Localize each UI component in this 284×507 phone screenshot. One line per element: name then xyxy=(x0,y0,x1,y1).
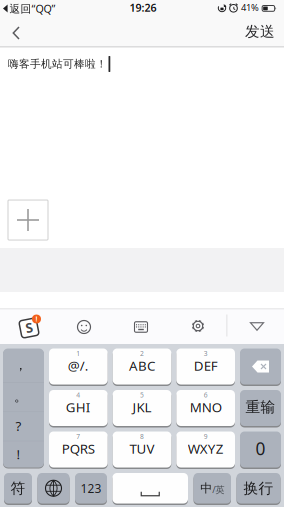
button[interactable]: 0 xyxy=(240,432,281,468)
button[interactable]: 发送 xyxy=(245,22,275,40)
staticText: @/. xyxy=(68,357,89,374)
staticText: 2 xyxy=(140,349,144,358)
staticText: 123 xyxy=(80,480,101,496)
staticText: 6 xyxy=(204,391,208,399)
staticText: 1 xyxy=(76,349,80,358)
staticText: 换行 xyxy=(243,479,273,497)
button[interactable]: @/. xyxy=(49,348,108,385)
button[interactable]: 数字 xyxy=(75,473,107,504)
staticText: ABC xyxy=(129,357,155,374)
button[interactable]: 符号 xyxy=(4,473,32,504)
button[interactable]: ABC xyxy=(113,348,171,385)
button[interactable]: 删除 xyxy=(240,349,281,385)
staticText: 0 xyxy=(255,437,265,460)
staticText: ? xyxy=(15,417,21,435)
button[interactable]: PQRS xyxy=(49,431,108,468)
button[interactable]: 添加附件 xyxy=(8,200,48,240)
button[interactable]: 表情 xyxy=(77,320,90,333)
button[interactable]: 标点 xyxy=(3,348,44,468)
staticText: JKL xyxy=(132,398,151,416)
button[interactable]: 设置 xyxy=(191,319,205,333)
staticText: 中 xyxy=(200,481,212,496)
button[interactable]: 重输 xyxy=(240,390,281,426)
staticText: 符 xyxy=(10,479,25,497)
button[interactable]: 切换输入法 xyxy=(37,473,69,504)
button[interactable]: JKL xyxy=(113,390,171,427)
staticText: 19:26 xyxy=(129,0,156,15)
staticText: 重输 xyxy=(245,398,275,416)
button[interactable]: 换行 xyxy=(236,473,280,504)
button[interactable]: 键盘切换 xyxy=(134,322,147,332)
staticText: 8 xyxy=(140,432,144,441)
staticText: 发送 xyxy=(245,22,275,40)
staticText: 。 xyxy=(14,388,27,405)
button[interactable]: 中英切换 xyxy=(193,473,231,504)
staticText: 41% xyxy=(241,1,259,14)
button[interactable]: 收起键盘 xyxy=(250,323,263,330)
staticText: ! xyxy=(35,315,37,323)
staticText: TUV xyxy=(129,440,154,457)
staticText: 嗨客手机站可棒啦！ xyxy=(8,57,107,70)
button[interactable]: WXYZ xyxy=(176,431,235,468)
staticText: 4 xyxy=(76,391,80,399)
staticText: 7 xyxy=(76,432,80,441)
button[interactable]: 空格 xyxy=(112,473,188,504)
button[interactable]: GHI xyxy=(49,390,108,427)
staticText: /英 xyxy=(212,483,224,496)
staticText: S xyxy=(25,319,32,336)
button[interactable]: TUV xyxy=(113,431,171,468)
staticText: DEF xyxy=(194,357,218,374)
staticText: 5 xyxy=(140,391,144,399)
staticText: WXYZ xyxy=(188,440,224,457)
button[interactable]: 返回 xyxy=(12,27,19,39)
staticText: ! xyxy=(16,445,20,463)
staticText: PQRS xyxy=(62,440,95,457)
staticText: MNO xyxy=(190,398,222,416)
staticText: 返回“QQ” xyxy=(10,1,56,16)
staticText: 3 xyxy=(204,349,208,358)
staticText: ， xyxy=(14,357,27,373)
staticText: GHI xyxy=(66,398,91,416)
button[interactable]: DEF xyxy=(176,348,235,385)
button[interactable]: 搜狗输入法 xyxy=(20,319,38,337)
button[interactable]: MNO xyxy=(176,390,235,427)
staticText: 9 xyxy=(204,432,208,441)
